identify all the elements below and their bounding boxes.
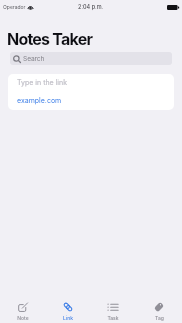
staticText: Note [17, 315, 29, 321]
staticText: Notes Taker [7, 29, 93, 48]
staticText: Type in the link [17, 78, 67, 86]
staticText: Link [63, 315, 73, 321]
button[interactable]: Link [45, 298, 90, 323]
button[interactable]: Task [90, 298, 136, 323]
staticText: Tag [155, 315, 164, 321]
button[interactable]: Note [0, 298, 45, 323]
staticText: Task [107, 315, 119, 321]
button[interactable]: Type in the link [8, 74, 174, 110]
staticText: 2:04 p.m. [78, 4, 104, 11]
staticText: Search [23, 55, 45, 63]
staticText: Operador [3, 4, 26, 10]
button[interactable]: Tag [136, 298, 182, 323]
staticText: example.com [17, 96, 62, 104]
button[interactable]: Search [10, 52, 172, 65]
